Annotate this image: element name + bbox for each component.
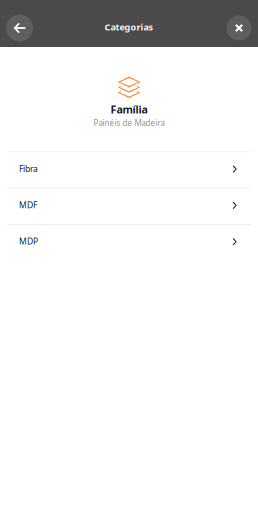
button[interactable]: Fechar: [225, 14, 253, 42]
staticText: Fibra: [19, 163, 38, 174]
staticText: MDF: [19, 199, 37, 211]
button[interactable]: Fibra: [0, 152, 258, 188]
button[interactable]: Voltar: [5, 14, 33, 42]
staticText: MDP: [19, 235, 38, 247]
staticText: Família: [110, 102, 147, 116]
staticText: Categorias: [104, 21, 153, 33]
button[interactable]: MDP: [0, 225, 258, 260]
staticText: Painéis de Madeira: [93, 117, 164, 128]
button[interactable]: MDF: [0, 189, 258, 224]
